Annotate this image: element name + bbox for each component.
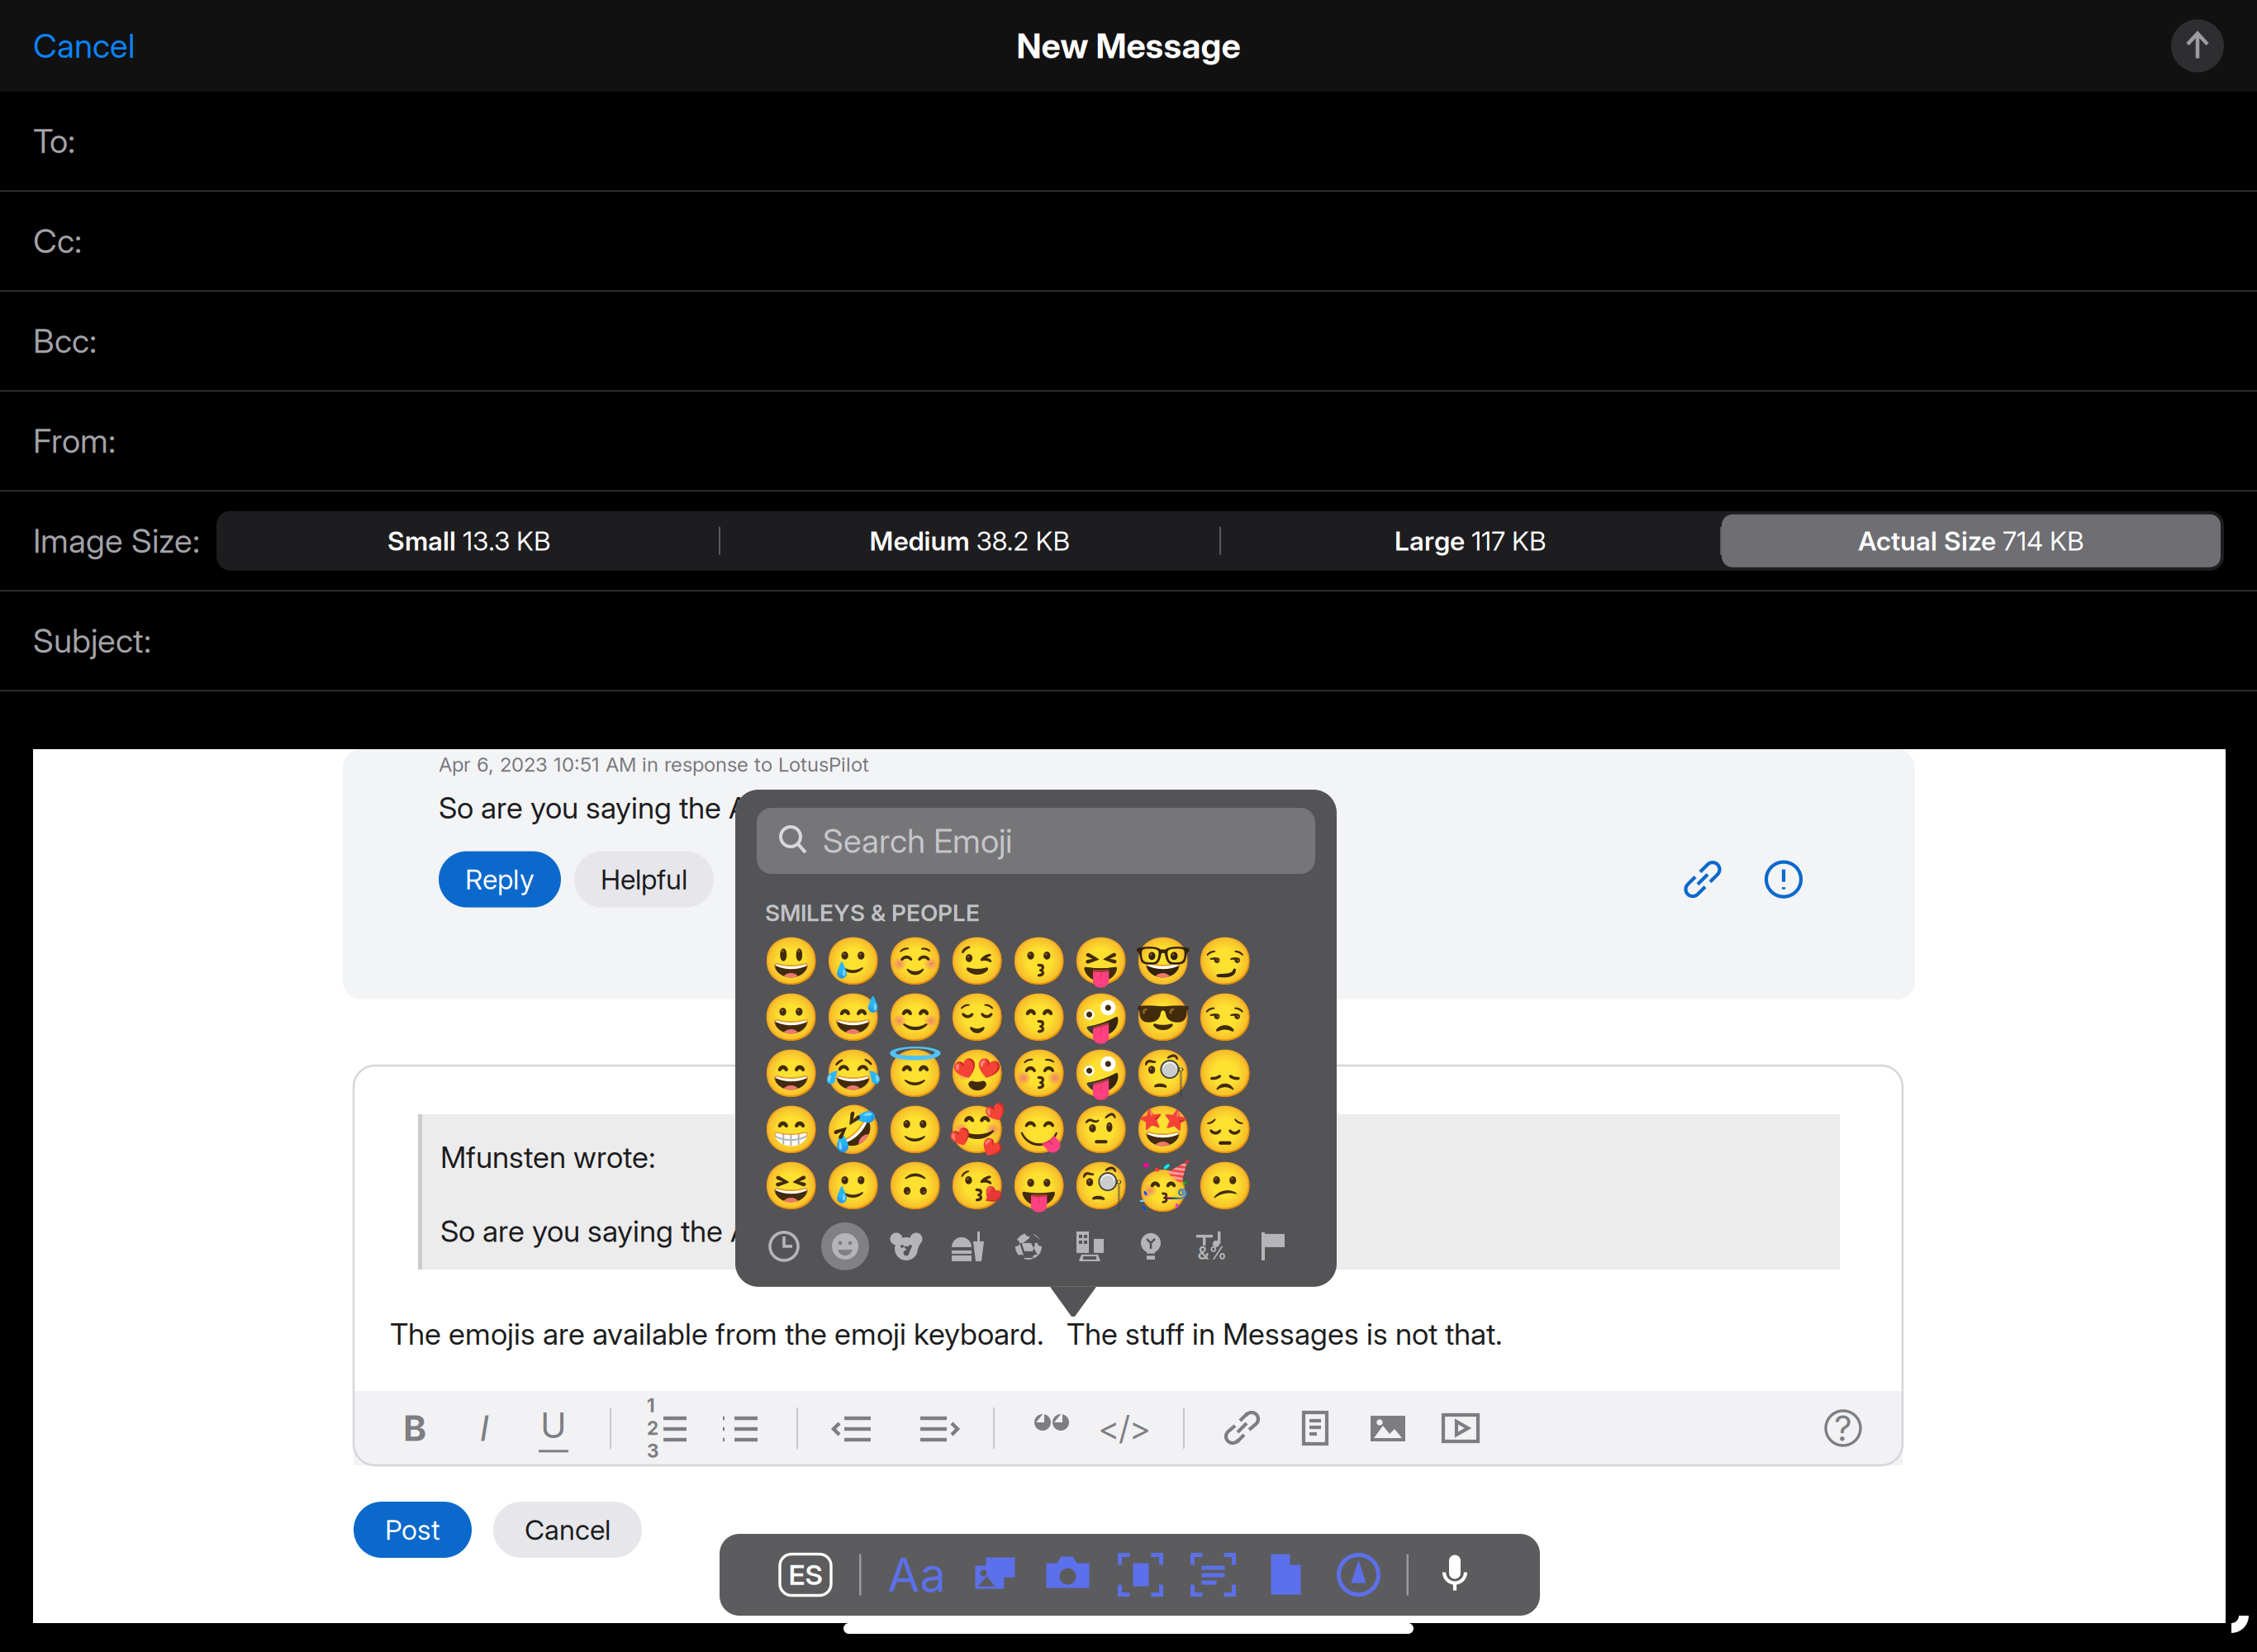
staticText: 😄 <box>762 1047 820 1101</box>
button[interactable]: Emoji <box>760 1161 822 1211</box>
button[interactable]: Emoji <box>760 937 822 986</box>
button[interactable]: Insert <box>970 1550 1020 1600</box>
button[interactable]: Emoji <box>1132 993 1194 1042</box>
button[interactable]: Emoji <box>1070 1161 1132 1211</box>
button[interactable]: Indent <box>896 1392 972 1464</box>
button[interactable]: Dictate <box>1430 1550 1480 1600</box>
staticText: Large <box>1395 525 1465 557</box>
button[interactable]: Emoji <box>884 1161 946 1211</box>
button[interactable]: Emoji <box>1070 993 1132 1042</box>
button[interactable]: Emoji <box>946 1105 1008 1155</box>
button[interactable]: Video <box>1424 1392 1497 1464</box>
staticText: 🙃 <box>886 1159 944 1213</box>
staticText: To: <box>33 121 75 161</box>
button[interactable]: Emoji category <box>815 1221 876 1272</box>
button[interactable]: Insert <box>1116 1550 1165 1600</box>
button[interactable]: Outdent <box>820 1392 896 1464</box>
button[interactable]: Emoji <box>884 937 946 986</box>
staticText: Small <box>387 525 456 557</box>
button[interactable]: Emoji category <box>753 1221 815 1272</box>
button[interactable]: Numbered list <box>633 1392 704 1464</box>
button[interactable]: Emoji <box>760 1049 822 1098</box>
button[interactable]: Code <box>1087 1392 1162 1464</box>
button[interactable]: Send <box>2171 19 2257 72</box>
button[interactable]: Copy link <box>1683 860 1722 899</box>
button[interactable]: Emoji <box>946 1161 1008 1211</box>
button[interactable]: Emoji <box>822 1105 884 1155</box>
staticText: Search Emoji <box>823 821 1012 861</box>
button[interactable]: Emoji category <box>1243 1221 1304 1272</box>
staticText: 🤣 <box>824 1103 882 1157</box>
button[interactable]: Underline <box>519 1392 588 1464</box>
button[interactable]: Actual Size <box>1722 514 2221 567</box>
button[interactable]: Emoji <box>1008 1161 1070 1211</box>
button[interactable]: Emoji <box>822 1161 884 1211</box>
button[interactable]: Emoji <box>884 1049 946 1098</box>
button[interactable]: Emoji <box>1132 1161 1194 1211</box>
button[interactable]: Emoji <box>1132 1049 1194 1098</box>
button[interactable]: Bold <box>380 1392 449 1464</box>
button[interactable]: Document <box>1279 1392 1352 1464</box>
button[interactable]: Report <box>1764 860 1803 899</box>
button[interactable]: Emoji <box>822 993 884 1042</box>
button[interactable]: Emoji <box>1194 1049 1256 1098</box>
button[interactable]: Emoji <box>884 1105 946 1155</box>
button[interactable]: Italic <box>449 1392 519 1464</box>
staticText: 🧐 <box>1072 1159 1130 1213</box>
button[interactable]: Help <box>1807 1392 1879 1464</box>
staticText: I <box>480 1407 489 1449</box>
button[interactable]: Emoji <box>760 993 822 1042</box>
staticText: Post <box>385 1513 440 1546</box>
button[interactable]: Emoji <box>822 1049 884 1098</box>
button[interactable]: Emoji category <box>876 1221 937 1272</box>
button[interactable]: Emoji <box>1132 937 1194 986</box>
button[interactable]: Cancel <box>0 0 168 92</box>
button[interactable]: Emoji <box>822 937 884 986</box>
button[interactable]: Emoji <box>946 1049 1008 1098</box>
button[interactable]: Emoji <box>1194 937 1256 986</box>
button[interactable]: Emoji <box>946 993 1008 1042</box>
button[interactable]: Large <box>1221 514 1720 567</box>
button[interactable]: Emoji <box>946 937 1008 986</box>
button[interactable]: Insert <box>1188 1550 1238 1600</box>
button[interactable]: Link <box>1206 1392 1279 1464</box>
button[interactable]: Emoji category <box>998 1221 1059 1272</box>
button[interactable]: Cancel <box>493 1502 642 1558</box>
button[interactable]: Emoji <box>1194 1161 1256 1211</box>
button[interactable]: Helpful <box>574 851 714 907</box>
button[interactable]: Emoji <box>1070 937 1132 986</box>
button[interactable]: Emoji category <box>1059 1221 1120 1272</box>
button[interactable]: Emoji <box>1070 1049 1132 1098</box>
button[interactable]: Insert <box>1261 1550 1311 1600</box>
button[interactable]: Bulleted list <box>704 1392 775 1464</box>
staticText: Cancel <box>33 26 135 66</box>
button[interactable]: Medium <box>720 514 1219 567</box>
button[interactable]: Emoji <box>1008 1049 1070 1098</box>
button[interactable]: Insert <box>1043 1550 1093 1600</box>
button[interactable]: Emoji <box>1070 1105 1132 1155</box>
button[interactable]: Post <box>354 1502 472 1558</box>
button[interactable]: Image <box>1352 1392 1424 1464</box>
staticText: ? <box>1834 1407 1852 1449</box>
button[interactable]: Emoji <box>1194 1105 1256 1155</box>
staticText: 🤓 <box>1134 934 1192 988</box>
staticText: 😅 <box>824 990 882 1045</box>
button[interactable]: Format <box>886 1543 947 1606</box>
button[interactable]: Insert <box>1334 1550 1383 1600</box>
staticText: ES <box>789 1558 822 1591</box>
button[interactable]: Emoji <box>1132 1105 1194 1155</box>
button[interactable]: Small <box>220 514 719 567</box>
button[interactable]: Emoji <box>884 993 946 1042</box>
button[interactable]: Emoji <box>1008 937 1070 986</box>
button[interactable]: Emoji <box>1194 993 1256 1042</box>
button[interactable]: Emoji <box>1008 993 1070 1042</box>
staticText: 😔 <box>1196 1103 1254 1157</box>
button[interactable]: Emoji <box>1008 1105 1070 1155</box>
button[interactable]: Emoji category <box>1181 1221 1243 1272</box>
button[interactable]: Emoji category <box>1120 1221 1181 1272</box>
button[interactable]: Emoji category <box>937 1221 998 1272</box>
button[interactable]: Emoji <box>760 1105 822 1155</box>
button[interactable]: Reply <box>439 851 561 907</box>
button[interactable]: Language <box>780 1554 831 1595</box>
button[interactable]: Quote <box>1016 1392 1087 1464</box>
